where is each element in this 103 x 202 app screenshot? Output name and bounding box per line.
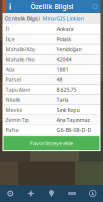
staticText: 1881 <box>56 66 68 73</box>
staticText: Öznitelik Bilgisi <box>4 15 39 22</box>
button[interactable]: Favori listeye ekle <box>3 136 99 150</box>
staticText: Ana Taşınmaz <box>56 116 90 123</box>
staticText: İlçe <box>5 36 14 43</box>
staticText: Polatlı <box>56 36 70 43</box>
button[interactable]: Ayarlar <box>89 0 100 13</box>
staticText: Mina/GIS Linkleri <box>42 15 83 22</box>
button[interactable]: Ölçüm <box>62 185 82 202</box>
staticText: Zemin Tip <box>5 116 28 123</box>
button[interactable]: Pusula <box>82 185 103 202</box>
staticText: Tarla <box>56 96 68 103</box>
staticText: 42044 <box>56 56 71 63</box>
staticText: Ankara <box>56 25 73 33</box>
button[interactable]: Katmanlar <box>0 185 21 202</box>
staticText: Mahalle/Köy <box>5 46 35 53</box>
staticText: Yenidoğan <box>56 46 81 53</box>
button[interactable]: Konum <box>21 185 41 202</box>
staticText: Tapu Alanı <box>5 86 29 93</box>
button[interactable]: Öznitelik Bilgisi <box>4 15 39 22</box>
staticText: 8.625,75 <box>56 86 76 93</box>
staticText: Nitelik <box>5 96 20 103</box>
staticText: Favori listeye ekle <box>30 140 73 147</box>
staticText: Sırık Koyu <box>56 106 79 113</box>
staticText: İl <box>5 25 8 33</box>
staticText: Özellik Bilgisi <box>31 2 74 11</box>
staticText: G6-B6-08-D-D <box>56 126 91 134</box>
staticText: Ada <box>5 66 14 73</box>
button[interactable]: Bilgi <box>6 0 15 13</box>
staticText: Mahalle /No <box>5 56 34 63</box>
button[interactable]: İşaretle <box>41 185 62 202</box>
staticText: 48 <box>56 76 62 83</box>
staticText: Pafta <box>5 126 18 134</box>
staticText: Parsel <box>5 76 20 83</box>
staticText: Mevkii <box>5 106 21 113</box>
button[interactable]: Mina/GIS Linkleri <box>42 15 83 22</box>
